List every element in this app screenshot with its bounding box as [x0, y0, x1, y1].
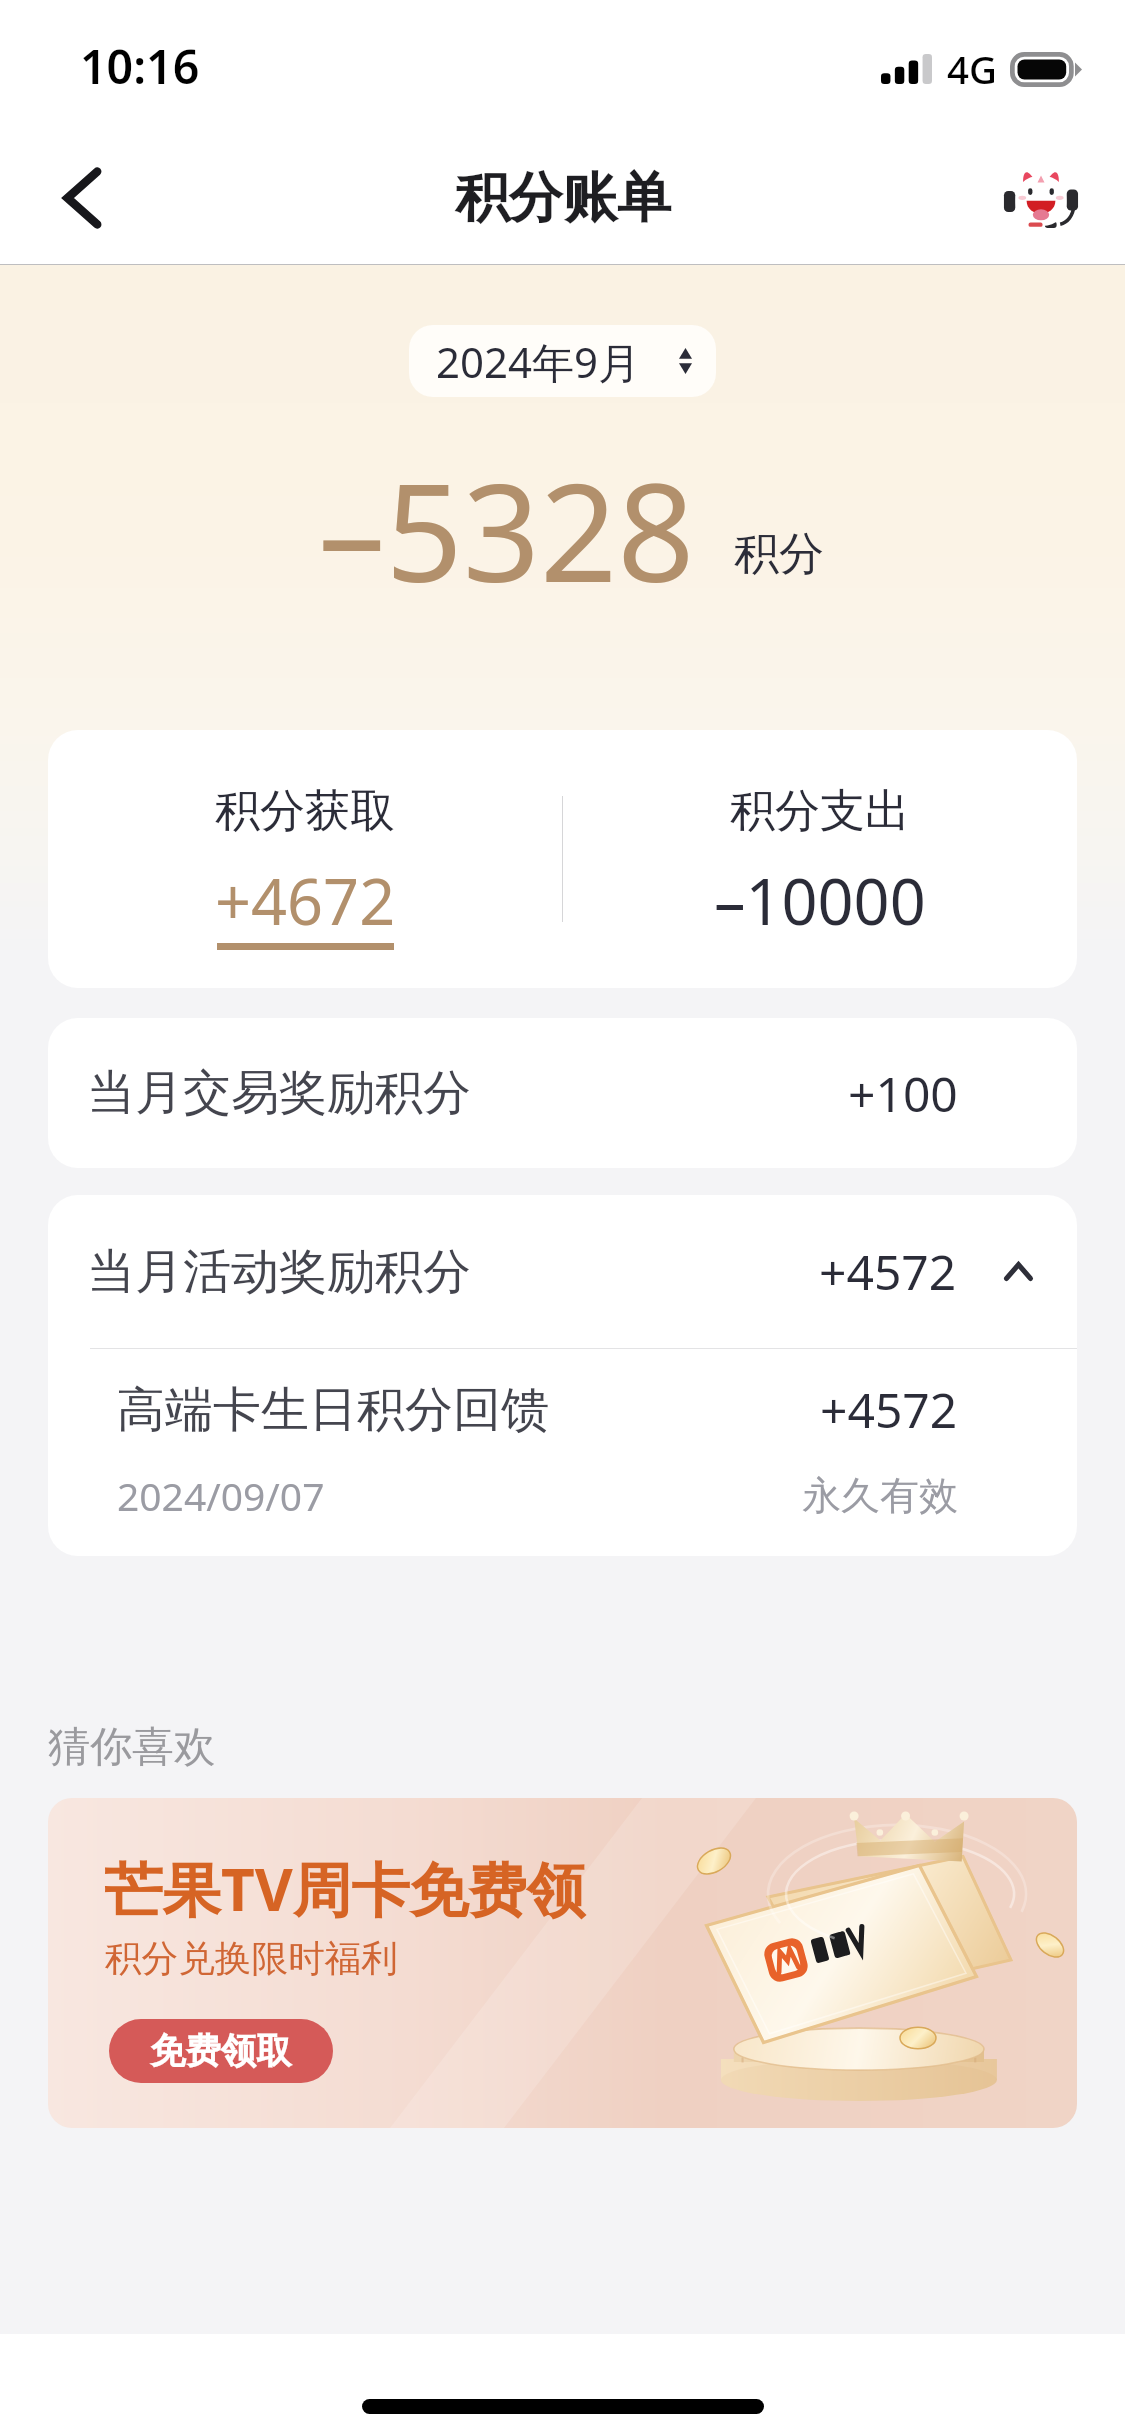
staticText: 积分兑换限时福利: [105, 1936, 398, 1982]
staticText: 积分账单: [455, 164, 671, 232]
staticText: 永久有效: [802, 1471, 958, 1520]
staticText: 积分获取: [215, 783, 395, 840]
staticText: +4572: [820, 1377, 958, 1442]
staticText: +4672: [215, 858, 396, 944]
staticText: +4572: [819, 1239, 957, 1304]
staticText: 2024年9月: [436, 333, 641, 390]
button[interactable]: 芒果TV周卡免费领: [48, 1798, 1077, 2128]
staticText: 当月活动奖励积分: [87, 1242, 471, 1302]
staticText: 当月交易奖励积分: [87, 1063, 471, 1123]
button[interactable]: Back: [18, 132, 150, 264]
staticText: +100: [848, 1061, 958, 1126]
button[interactable]: Customer service: [1002, 159, 1080, 237]
button[interactable]: 高端卡生日积分回馈: [48, 1349, 1077, 1556]
staticText: –10000: [714, 858, 926, 944]
staticText: –5328: [318, 438, 695, 622]
staticText: 积分支出: [730, 783, 910, 840]
button[interactable]: 2024年9月: [409, 325, 716, 397]
button[interactable]: 积分支出: [562, 730, 1077, 988]
button[interactable]: 当月交易奖励积分: [48, 1018, 1077, 1168]
staticText: 积分: [734, 526, 824, 583]
staticText: 高端卡生日积分回馈: [117, 1380, 549, 1440]
button[interactable]: 积分获取: [48, 730, 562, 988]
staticText: 4G: [947, 43, 997, 95]
button[interactable]: 当月活动奖励积分: [48, 1195, 1077, 1348]
staticText: 芒果TV周卡免费领: [104, 1848, 586, 1928]
staticText: 猜你喜欢: [48, 1721, 216, 1774]
staticText: 免费领取: [150, 2029, 292, 2074]
staticText: 10:16: [80, 34, 200, 97]
staticText: 2024/09/07: [117, 1469, 325, 1522]
button[interactable]: 免费领取: [109, 2019, 333, 2083]
